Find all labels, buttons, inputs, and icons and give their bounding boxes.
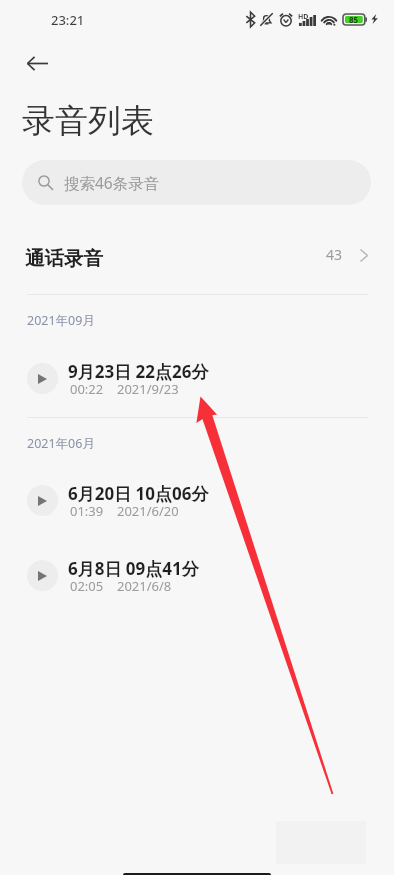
staticText: 43: [326, 245, 343, 264]
button[interactable]: 6月20日 10点06分: [0, 472, 394, 532]
staticText: 85: [349, 14, 359, 25]
staticText: 录音列表: [22, 100, 154, 142]
staticText: 9月23日 22点26分: [68, 360, 209, 383]
staticText: 2021/6/8: [117, 577, 172, 595]
staticText: 搜索46条录音: [64, 172, 160, 193]
staticText: 2021/6/20: [117, 502, 179, 520]
staticText: 2021/9/23: [117, 380, 179, 398]
staticText: 2021年06月: [27, 435, 95, 452]
staticText: 2021年09月: [27, 312, 95, 329]
button[interactable]: 6月8日 09点41分: [0, 547, 394, 607]
staticText: 6月8日 09点41分: [68, 557, 199, 580]
staticText: 00:22: [70, 380, 104, 398]
staticText: HD: [298, 12, 309, 22]
button[interactable]: 9月23日 22点26分: [0, 350, 394, 410]
staticText: 02:05: [70, 577, 104, 595]
staticText: 01:39: [70, 502, 104, 520]
button[interactable]: Back: [13, 39, 61, 87]
button[interactable]: 搜索46条录音: [22, 160, 371, 205]
staticText: 23:21: [51, 11, 85, 29]
button[interactable]: 通话录音: [0, 230, 394, 286]
staticText: 通话录音: [25, 246, 103, 271]
staticText: 6月20日 10点06分: [68, 482, 209, 505]
